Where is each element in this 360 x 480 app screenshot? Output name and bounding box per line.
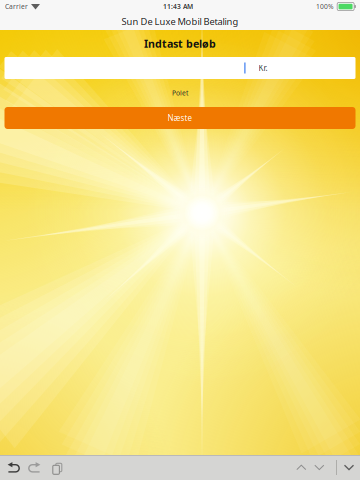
button[interactable]: Amount <box>4 57 355 79</box>
button[interactable]: Previous field <box>295 460 307 475</box>
staticText: Kr. <box>258 63 267 73</box>
staticText: Carrier <box>5 2 28 11</box>
staticText: 11:43 AM <box>163 2 193 11</box>
button[interactable]: Hide keyboard <box>343 460 355 475</box>
button[interactable]: Next field <box>313 460 325 475</box>
staticText: Næste <box>167 113 192 123</box>
staticText: Polet <box>172 89 188 97</box>
staticText: Sun De Luxe Mobil Betaling <box>121 15 238 28</box>
button[interactable]: Næste <box>4 107 355 129</box>
button[interactable]: Undo <box>6 459 22 475</box>
staticText: Indtast beløb <box>144 36 216 51</box>
staticText: 100% <box>316 2 334 11</box>
button[interactable]: Paste <box>48 459 64 475</box>
button[interactable]: Redo <box>26 459 42 475</box>
